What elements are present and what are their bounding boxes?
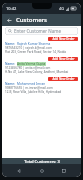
button[interactable]: Home [37, 166, 47, 176]
staticText: Add New Order [52, 77, 75, 81]
button[interactable]: Back [14, 166, 24, 176]
staticText: Anita Verma Gupta [17, 62, 46, 66]
staticText: 9123456780 | anita.v@mail.com [5, 66, 51, 70]
staticText: Add New Order [52, 37, 75, 41]
staticText: Total Customers: 3 [24, 159, 60, 164]
button[interactable]: Recents [59, 166, 69, 176]
staticText: Enter Customer Name [14, 28, 62, 34]
staticText: 4G [59, 6, 65, 11]
staticText: 9876543210 | rajesh.k@mail.com [5, 46, 52, 50]
staticText: H.No 47, Lake View Colony, Andheri, Mumb… [5, 70, 69, 74]
button[interactable]: Enter Customer Name [5, 27, 78, 35]
button[interactable]: Add New Order [48, 37, 78, 41]
button[interactable]: Add New Order [48, 77, 78, 81]
staticText: 12-B, Rose Villa, Jubilee Hills, Hyderab… [5, 90, 62, 94]
button[interactable]: Add New Order [2, 76, 81, 96]
staticText: Add New Order [52, 57, 75, 61]
staticText: Flat 203, Green Park Road, Sector 14, No… [5, 50, 67, 54]
staticText: Name: [5, 82, 16, 86]
staticText: Customers [16, 16, 48, 24]
staticText: Rajesh Kumar Sharma [17, 42, 51, 46]
staticText: Name: [5, 42, 16, 46]
button[interactable]: Add New Order [2, 36, 81, 56]
staticText: Name: [5, 62, 16, 66]
button[interactable]: Add New Order [2, 56, 81, 76]
staticText: Mohammed Imran [17, 82, 46, 86]
button[interactable]: Total Customers: 3 [2, 158, 81, 164]
button[interactable]: Add New Order [48, 57, 78, 61]
staticText: 9988776655 | m.imran@mail.com [5, 86, 53, 90]
button[interactable]: Back [5, 16, 14, 25]
staticText: 10:42 [6, 6, 17, 11]
